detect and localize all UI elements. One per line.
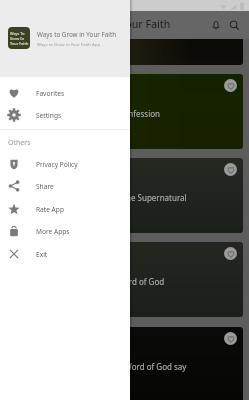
button[interactable]: Add to favorites [224,163,237,176]
button[interactable]: Rate App [0,198,130,220]
button[interactable]: Ways to Grow in Your Faith [6,0,243,65]
staticText: Ways to Grow in Your Faith [67,24,168,35]
staticText: Ways to Grow in Your Faith [37,30,117,39]
staticText: Living by the Word of God [67,276,165,287]
staticText: More Apps [36,227,70,236]
staticText: Ways to Grow in Your Faith App [37,41,101,47]
staticText: The Power of Confession [67,108,160,119]
button[interactable]: More Apps [0,220,130,242]
staticText: What Does the Word of God say [67,361,187,372]
staticText: Exit [36,250,48,259]
button[interactable]: The Power of Confession [6,74,243,149]
button[interactable]: Search [224,15,244,35]
staticText: Settings [36,111,62,120]
staticText: Others [8,138,31,148]
button[interactable]: Open navigation drawer [10,15,30,35]
staticText: Rate App [36,205,64,214]
staticText: Ways To Grow In Your Faith [10,31,29,46]
button[interactable]: Settings [0,104,130,126]
button[interactable]: Living by the Word of God [6,242,243,317]
button[interactable]: Your Access to the Supernatural [6,158,243,233]
button[interactable]: Share [0,175,130,197]
staticText: Share [36,182,54,191]
button[interactable]: Favorites [0,82,130,104]
staticText: Favorites [36,89,65,98]
staticText: Ways to Grow in Your Faith [36,17,171,31]
button[interactable]: Add to favorites [224,247,237,260]
staticText: Privacy Policy [36,160,78,169]
button[interactable]: Add to favorites [224,79,237,92]
button[interactable]: Add to favorites [224,0,237,8]
button[interactable]: Add to favorites [224,332,237,345]
button[interactable]: Privacy Policy [0,153,130,175]
button[interactable]: What Does the Word of God say [6,327,243,400]
button[interactable]: Exit [0,243,130,265]
button[interactable]: Notifications [206,15,226,35]
staticText: Your Access to the Supernatural [67,192,187,203]
